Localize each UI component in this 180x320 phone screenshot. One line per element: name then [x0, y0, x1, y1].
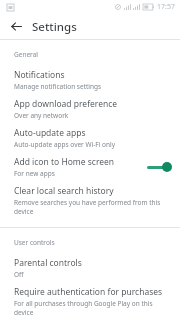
button[interactable]: Add icon to Home screen toggle — [146, 159, 172, 175]
button[interactable]: Clear local search history — [0, 182, 180, 220]
staticText: For new apps — [14, 169, 55, 178]
staticText: Off — [14, 270, 24, 279]
staticText: User controls — [14, 238, 55, 247]
staticText: General — [14, 50, 38, 59]
staticText: Over any network — [14, 111, 69, 120]
staticText: 17:57 — [157, 2, 175, 12]
staticText: Clear local search history — [14, 185, 114, 197]
button[interactable]: Auto-update apps — [0, 124, 180, 153]
staticText: For all purchases through Google Play on… — [14, 299, 172, 316]
button[interactable]: Notifications — [0, 66, 180, 95]
staticText: Auto-update apps over Wi-Fi only — [14, 140, 115, 149]
staticText: Parental controls — [14, 257, 82, 269]
button[interactable]: App download preference — [0, 95, 180, 124]
staticText: Require authentication for purchases — [14, 286, 163, 298]
staticText: Add icon to Home screen — [14, 156, 115, 168]
staticText: Remove searches you have performed from … — [14, 198, 172, 216]
staticText: Manage notification settings — [14, 82, 102, 91]
button[interactable]: Back — [0, 14, 32, 39]
staticText: App download preference — [14, 98, 118, 110]
staticText: Auto-update apps — [14, 127, 86, 139]
staticText: Settings — [32, 19, 77, 35]
staticText: Notifications — [14, 69, 65, 81]
button[interactable]: Add icon to Home screen — [0, 153, 180, 182]
button[interactable]: Require authentication for purchases — [0, 283, 180, 320]
button[interactable]: Parental controls — [0, 254, 180, 283]
